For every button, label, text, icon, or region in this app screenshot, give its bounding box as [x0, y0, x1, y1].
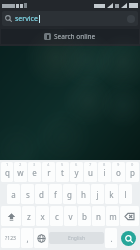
staticText: 1 — [6, 162, 9, 167]
button[interactable]: a — [7, 184, 20, 204]
staticText: t — [61, 167, 64, 178]
staticText: c — [55, 211, 59, 222]
staticText: j — [96, 189, 99, 200]
button[interactable]: 3 — [28, 162, 41, 182]
button[interactable]: 0 — [126, 162, 139, 182]
staticText: u — [88, 167, 93, 178]
button[interactable]: 6 — [70, 162, 83, 182]
button[interactable]: 8 — [98, 162, 111, 182]
button[interactable]: v — [64, 206, 77, 226]
button[interactable]: service — [2, 11, 138, 26]
staticText: m — [109, 211, 117, 222]
staticText: Search online — [54, 32, 96, 41]
button[interactable]: 7 — [84, 162, 97, 182]
staticText: l — [124, 189, 127, 200]
button[interactable]: Search online — [1, 29, 139, 44]
button[interactable]: Shift — [1, 206, 21, 226]
staticText: English — [68, 235, 86, 242]
staticText: e — [32, 167, 37, 178]
button[interactable]: j — [91, 184, 104, 204]
staticText: n — [96, 211, 101, 222]
staticText: 0 — [131, 162, 134, 167]
staticText: z — [27, 211, 31, 222]
button[interactable]: 1 — [1, 162, 13, 182]
staticText: d — [39, 189, 44, 200]
button[interactable]: English — [49, 232, 104, 244]
staticText: b — [82, 211, 87, 222]
staticText: o — [116, 167, 121, 178]
staticText: a — [11, 189, 16, 200]
staticText: g — [67, 189, 72, 200]
staticText: i — [103, 167, 106, 178]
button[interactable]: d — [35, 184, 48, 204]
staticText: , — [26, 233, 29, 244]
staticText: r — [47, 167, 51, 178]
button[interactable]: Voice search — [127, 15, 135, 23]
staticText: 5 — [61, 162, 64, 167]
staticText: w — [17, 167, 24, 178]
staticText: 9 — [117, 162, 120, 167]
staticText: ?123 — [5, 235, 16, 242]
button[interactable]: g — [63, 184, 76, 204]
button[interactable]: b — [78, 206, 91, 226]
staticText: 6 — [75, 162, 78, 167]
button[interactable]: x — [36, 206, 49, 226]
button[interactable]: f — [49, 184, 62, 204]
button[interactable]: h — [77, 184, 90, 204]
button[interactable]: Search — [121, 231, 136, 246]
staticText: s — [26, 189, 30, 200]
staticText: 3 — [33, 162, 36, 167]
staticText: k — [109, 189, 114, 200]
button[interactable]: Change language — [34, 228, 48, 248]
staticText: 8 — [103, 162, 106, 167]
button[interactable]: . — [105, 228, 117, 248]
button[interactable]: 4 — [42, 162, 55, 182]
button[interactable]: m — [106, 206, 119, 226]
staticText: . — [110, 233, 113, 244]
staticText: h — [81, 189, 86, 200]
staticText: q — [5, 167, 10, 178]
staticText: f — [54, 189, 57, 200]
staticText: 2 — [19, 162, 22, 167]
button[interactable]: n — [92, 206, 105, 226]
button[interactable]: 9 — [112, 162, 125, 182]
button[interactable]: s — [21, 184, 34, 204]
staticText: x — [40, 211, 45, 222]
button[interactable]: Backspace — [120, 206, 139, 226]
staticText: 4 — [47, 162, 50, 167]
button[interactable]: , — [21, 228, 33, 248]
staticText: v — [68, 211, 73, 222]
staticText: p — [130, 167, 135, 178]
staticText: y — [74, 167, 79, 178]
button[interactable]: k — [105, 184, 118, 204]
button[interactable]: 5 — [56, 162, 69, 182]
staticText: service — [15, 14, 38, 24]
button[interactable]: z — [22, 206, 35, 226]
staticText: 7 — [89, 162, 92, 167]
button[interactable]: l — [119, 184, 132, 204]
button[interactable]: ?123 — [1, 228, 20, 248]
button[interactable]: 2 — [14, 162, 27, 182]
button[interactable]: c — [50, 206, 63, 226]
